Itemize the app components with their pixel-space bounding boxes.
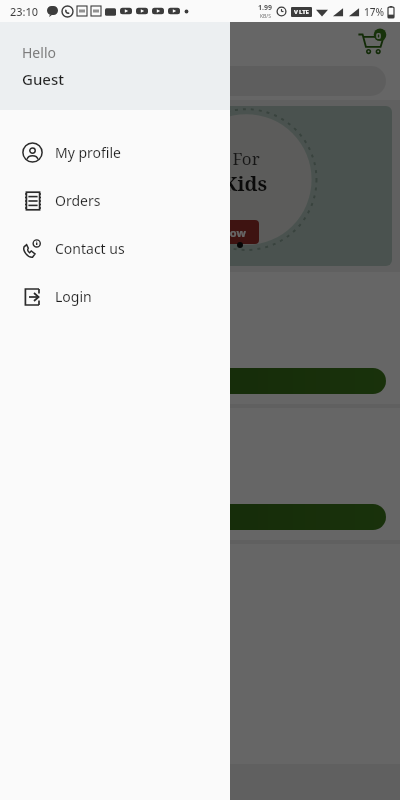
button[interactable]: Hello — [0, 22, 230, 110]
staticText: 23:10 — [10, 4, 39, 19]
staticText: KB/S — [260, 13, 271, 20]
staticText: Orders — [55, 191, 101, 210]
button[interactable]: BUY — [14, 504, 386, 530]
button[interactable]: Treats For — [8, 106, 392, 266]
staticText: Treats For — [177, 147, 260, 170]
button[interactable]: BUY — [0, 408, 400, 540]
staticText: Shop Now — [191, 225, 246, 240]
button[interactable]: Orders — [0, 176, 230, 224]
staticText: Your Kids — [169, 170, 268, 197]
button[interactable] — [14, 66, 386, 96]
button[interactable]: My profile — [0, 128, 230, 176]
staticText: My profile — [55, 143, 121, 162]
staticText: 1.99 — [258, 3, 272, 13]
button[interactable]: BUY — [14, 368, 386, 394]
staticText: 0 — [376, 29, 382, 41]
staticText: Guest — [22, 69, 64, 89]
button[interactable]: Login — [0, 272, 230, 320]
staticText: Contact us — [55, 239, 125, 258]
staticText: Login — [55, 287, 92, 306]
staticText: V LTE — [294, 8, 309, 16]
button[interactable]: Shop Now — [177, 220, 259, 244]
button[interactable]: Contact us — [0, 224, 230, 272]
button[interactable]: Cart — [356, 27, 386, 57]
button[interactable]: BUY — [0, 272, 400, 404]
staticText: 17% — [364, 5, 384, 19]
staticText: Hello — [22, 43, 56, 62]
